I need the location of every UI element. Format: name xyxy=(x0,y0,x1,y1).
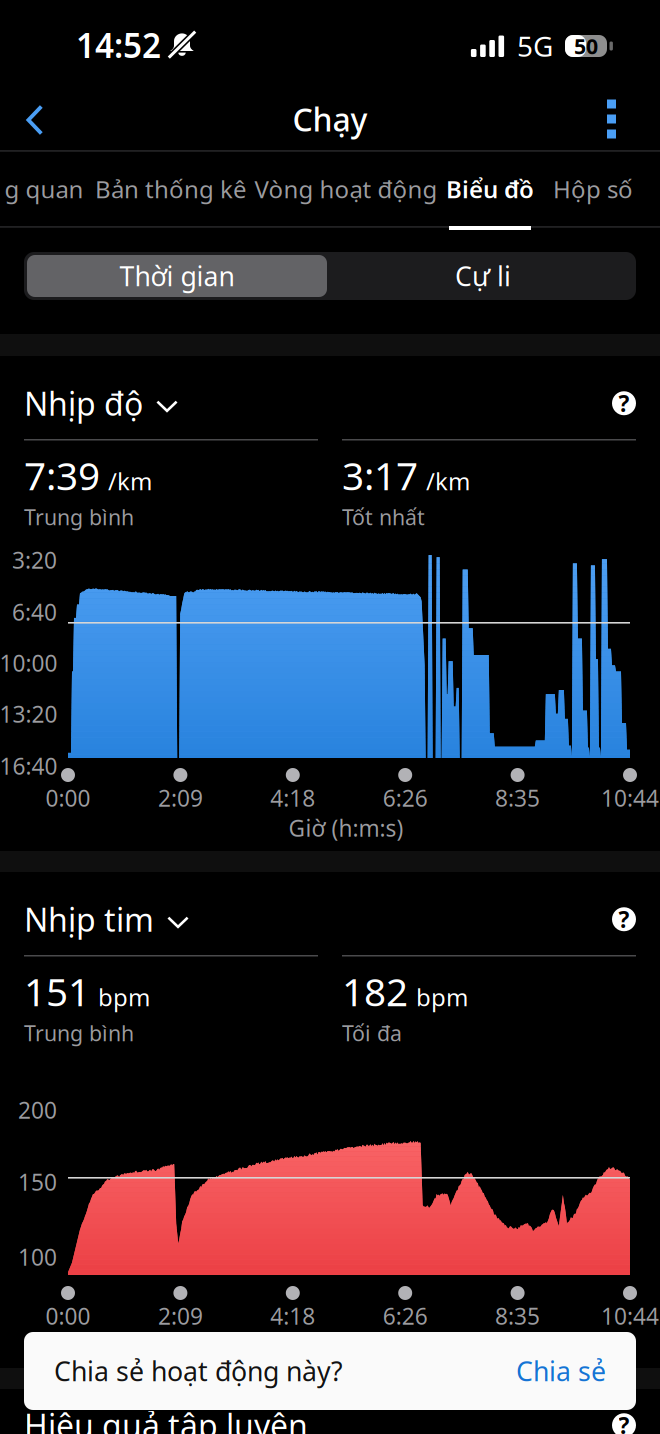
button[interactable]: Help about Nhịp tim xyxy=(612,907,636,931)
button[interactable]: Nhịp tim xyxy=(24,894,189,944)
staticText: 16:40 xyxy=(0,751,57,781)
staticText: ? xyxy=(618,388,629,418)
staticText: 14:52 xyxy=(76,23,161,67)
staticText: Nhịp tim xyxy=(24,898,154,940)
button[interactable]: Biểu đồ xyxy=(449,152,531,230)
staticText: 151 xyxy=(24,965,90,1017)
staticText: 8:35 xyxy=(495,1301,540,1331)
staticText: 10:44 xyxy=(601,1301,659,1331)
staticText: 6:26 xyxy=(383,1301,428,1331)
staticText: Vòng hoạt động xyxy=(254,173,437,205)
staticText: Nhịp độ xyxy=(24,382,143,424)
staticText: ? xyxy=(618,1410,629,1434)
staticText: 7:39 xyxy=(24,449,100,501)
staticText: bpm xyxy=(98,981,150,1013)
staticText: Chia sẻ hoạt động này? xyxy=(54,1353,343,1389)
staticText: 50 xyxy=(574,32,598,60)
staticText: 150 xyxy=(18,1167,57,1197)
staticText: 6:26 xyxy=(383,783,428,813)
button[interactable]: Help about training effect xyxy=(612,1413,636,1434)
button[interactable]: Thời gian xyxy=(27,255,327,297)
staticText: Trung bình xyxy=(24,503,134,531)
button[interactable]: Cự li xyxy=(333,255,633,297)
button[interactable]: Bản thống kê xyxy=(103,152,239,230)
staticText: Biểu đồ xyxy=(446,173,534,205)
staticText: ? xyxy=(618,904,629,934)
staticText: g quan xyxy=(4,173,83,205)
button[interactable]: g quan xyxy=(7,152,81,230)
staticText: 5G xyxy=(517,27,553,65)
button[interactable]: Hiệu quả tập luyện xyxy=(24,1404,308,1434)
staticText: Cự li xyxy=(455,258,511,294)
staticText: bpm xyxy=(416,981,468,1013)
staticText: Tốt nhất xyxy=(342,503,425,531)
staticText: 4:18 xyxy=(270,1301,315,1331)
staticText: 2:09 xyxy=(158,1301,203,1331)
button[interactable]: More options xyxy=(578,90,645,148)
staticText: Giờ (h:m:s) xyxy=(288,1331,403,1361)
staticText: Chạy xyxy=(292,98,367,140)
button[interactable]: Nhịp độ xyxy=(24,378,178,428)
staticText: 200 xyxy=(18,1095,57,1125)
button[interactable]: Chia sẻ hoạt động này? xyxy=(24,1332,636,1410)
staticText: Thời gian xyxy=(119,258,234,294)
staticText: 4:18 xyxy=(270,783,315,813)
staticText: Bản thống kê xyxy=(95,173,247,205)
staticText: Trung bình xyxy=(24,1019,134,1047)
staticText: 8:35 xyxy=(495,783,540,813)
staticText: Chia sẻ xyxy=(516,1353,606,1389)
staticText: Tối đa xyxy=(342,1019,402,1047)
staticText: 6:40 xyxy=(12,597,57,627)
staticText: 182 xyxy=(342,965,408,1017)
staticText: 100 xyxy=(18,1242,57,1272)
staticText: 3:20 xyxy=(12,545,57,575)
staticText: Hộp số xyxy=(553,173,633,205)
staticText: 0:00 xyxy=(45,1301,90,1331)
staticText: 0:00 xyxy=(45,783,90,813)
button[interactable]: Help about Nhịp độ xyxy=(612,391,636,415)
button[interactable]: Back xyxy=(2,92,68,148)
staticText: Giờ (h:m:s) xyxy=(288,813,403,843)
staticText: 2:09 xyxy=(158,783,203,813)
staticText: 10:00 xyxy=(0,648,57,678)
staticText: 10:44 xyxy=(601,783,659,813)
staticText: Hiệu quả tập luyện xyxy=(24,1404,308,1434)
button[interactable]: Vòng hoạt động xyxy=(266,152,426,230)
staticText: 3:17 xyxy=(342,449,418,501)
staticText: /km xyxy=(108,465,152,497)
staticText: /km xyxy=(426,465,470,497)
button[interactable]: Hộp số xyxy=(554,152,632,230)
staticText: 13:20 xyxy=(0,699,57,729)
